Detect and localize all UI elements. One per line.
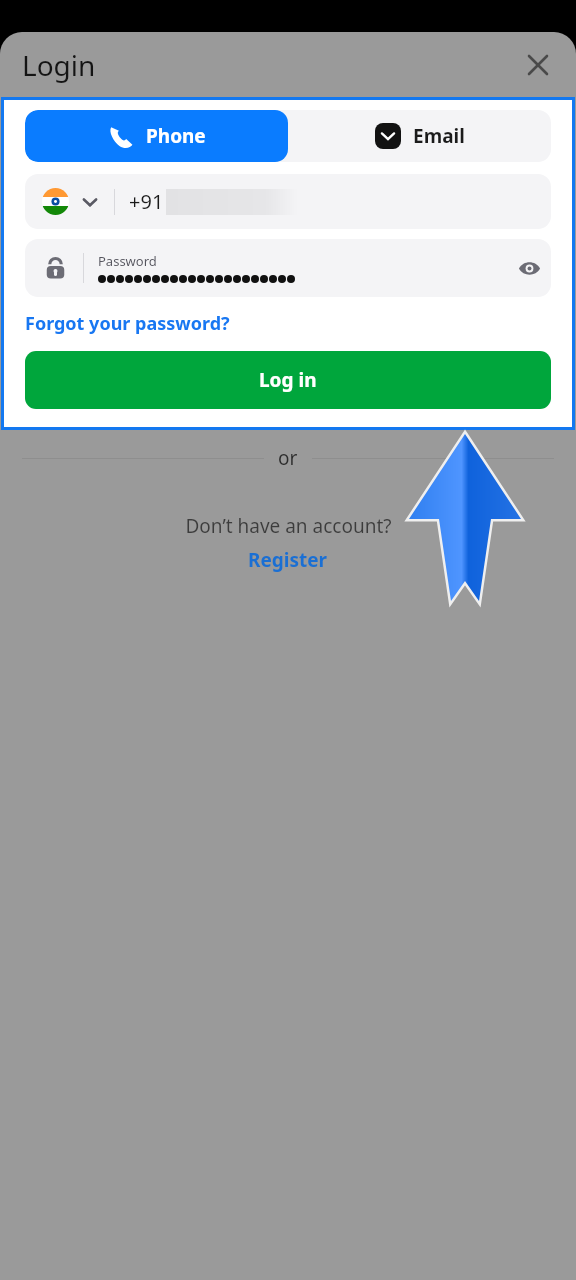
- staticText: Phone: [146, 123, 206, 149]
- button[interactable]: Forgot your password?: [25, 311, 230, 336]
- staticText: Login: [22, 46, 96, 84]
- button[interactable]: Register: [248, 547, 328, 573]
- button[interactable]: Log in: [25, 351, 551, 409]
- staticText: Log in: [259, 367, 317, 393]
- button[interactable]: Password: [25, 239, 551, 297]
- button[interactable]: Close: [520, 47, 556, 83]
- staticText: Don’t have an account?: [185, 513, 392, 539]
- button[interactable]: +91: [25, 174, 551, 229]
- staticText: Email: [413, 123, 465, 149]
- staticText: +91: [129, 188, 164, 215]
- staticText: or: [278, 445, 298, 471]
- button[interactable]: Show password: [509, 248, 549, 288]
- staticText: Password: [98, 252, 157, 270]
- button[interactable]: Email: [288, 110, 551, 162]
- button[interactable]: Phone: [25, 110, 288, 162]
